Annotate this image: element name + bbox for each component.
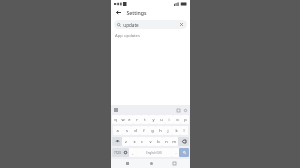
button[interactable]: Home bbox=[144, 159, 158, 168]
staticText: p bbox=[184, 117, 187, 122]
button[interactable]: z bbox=[122, 137, 130, 146]
button[interactable]: h bbox=[156, 126, 164, 135]
button[interactable]: n bbox=[162, 137, 170, 146]
button[interactable]: a bbox=[113, 126, 122, 135]
button[interactable]: x bbox=[130, 137, 138, 146]
button[interactable]: Search bbox=[179, 148, 189, 157]
button[interactable]: ?123 bbox=[112, 148, 122, 157]
staticText: m bbox=[172, 139, 176, 144]
button[interactable]: v bbox=[146, 137, 154, 146]
staticText: g bbox=[151, 128, 154, 133]
button[interactable]: j bbox=[164, 126, 172, 135]
button[interactable]: w bbox=[119, 115, 126, 124]
button[interactable]: y bbox=[149, 115, 157, 124]
staticText: h bbox=[159, 128, 162, 133]
staticText: b bbox=[157, 139, 160, 144]
staticText: a bbox=[116, 128, 119, 133]
staticText: English (UK) bbox=[146, 151, 162, 155]
staticText: w bbox=[121, 117, 125, 122]
staticText: z bbox=[125, 139, 127, 144]
staticText: d bbox=[134, 128, 137, 133]
button[interactable]: f bbox=[140, 126, 148, 135]
staticText: ?123 bbox=[114, 151, 121, 155]
button[interactable]: English (UK) bbox=[136, 148, 172, 157]
button[interactable]: u bbox=[157, 115, 165, 124]
staticText: t bbox=[144, 117, 146, 122]
button[interactable]: Clipboard bbox=[175, 107, 181, 113]
button[interactable]: e bbox=[126, 115, 133, 124]
button[interactable]: Keyboard settings bbox=[182, 107, 188, 113]
button[interactable]: r bbox=[133, 115, 141, 124]
staticText: n bbox=[165, 139, 168, 144]
button[interactable]: , bbox=[129, 148, 136, 157]
button[interactable]: d bbox=[131, 126, 140, 135]
staticText: k bbox=[175, 128, 178, 133]
button[interactable]: Recent apps bbox=[167, 159, 181, 168]
staticText: c bbox=[141, 139, 143, 144]
button[interactable]: s bbox=[122, 126, 131, 135]
staticText: x bbox=[133, 139, 136, 144]
button[interactable]: b bbox=[154, 137, 162, 146]
button[interactable]: t bbox=[141, 115, 149, 124]
staticText: l bbox=[183, 128, 185, 133]
button[interactable]: Google Assistant bbox=[113, 107, 119, 113]
staticText: v bbox=[149, 139, 152, 144]
button[interactable]: k bbox=[172, 126, 180, 135]
button[interactable]: p bbox=[181, 115, 189, 124]
staticText: q bbox=[114, 117, 117, 122]
staticText: Settings bbox=[126, 9, 147, 16]
staticText: y bbox=[152, 117, 155, 122]
button[interactable]: Backspace bbox=[178, 137, 189, 146]
staticText: o bbox=[176, 117, 179, 122]
staticText: f bbox=[143, 128, 145, 133]
staticText: i bbox=[168, 117, 170, 122]
button[interactable]: g bbox=[148, 126, 156, 135]
button[interactable]: Back bbox=[120, 159, 134, 168]
button[interactable]: Emoji bbox=[122, 148, 129, 157]
staticText: update bbox=[123, 22, 139, 28]
staticText: , bbox=[132, 150, 134, 155]
staticText: r bbox=[136, 117, 138, 122]
button[interactable]: update bbox=[114, 20, 187, 29]
button[interactable]: l bbox=[180, 126, 188, 135]
button[interactable]: Shift bbox=[112, 137, 122, 146]
staticText: . bbox=[175, 150, 177, 155]
button[interactable]: q bbox=[112, 115, 119, 124]
button[interactable]: i bbox=[165, 115, 173, 124]
staticText: s bbox=[126, 128, 128, 133]
button[interactable]: Clear search bbox=[179, 22, 184, 27]
button[interactable]: Back bbox=[114, 8, 123, 17]
button[interactable]: o bbox=[173, 115, 181, 124]
staticText: j bbox=[167, 128, 169, 133]
button[interactable]: m bbox=[170, 137, 178, 146]
staticText: e bbox=[128, 117, 131, 122]
button[interactable]: c bbox=[138, 137, 146, 146]
staticText: App updates bbox=[115, 33, 140, 39]
staticText: u bbox=[160, 117, 163, 122]
